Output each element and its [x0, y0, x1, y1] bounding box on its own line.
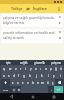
- button[interactable]: Shift: [1, 79, 10, 86]
- staticText: c: [22, 81, 24, 85]
- staticText: x: [17, 81, 19, 85]
- staticText: .: [51, 88, 52, 92]
- button[interactable]: v: [25, 79, 30, 86]
- button[interactable]: j: [33, 72, 39, 79]
- staticText: provide information on health and: [3, 31, 55, 35]
- staticText: ı: [40, 67, 41, 71]
- button[interactable]: l: [45, 72, 51, 79]
- staticText: d: [13, 74, 15, 78]
- button[interactable]: Clear: [58, 15, 62, 19]
- staticText: f: [18, 74, 20, 78]
- staticText: a: [3, 74, 5, 78]
- button[interactable]: k: [39, 72, 45, 79]
- staticText: w: [9, 67, 12, 71]
- button[interactable]: sağlık: [16, 60, 32, 65]
- button[interactable]: w: [7, 65, 13, 72]
- button[interactable]: x: [15, 79, 20, 86]
- button[interactable]: Home: [22, 93, 43, 100]
- button[interactable]: e: [13, 65, 18, 72]
- staticText: u: [35, 67, 37, 71]
- button[interactable]: h: [27, 72, 33, 79]
- button[interactable]: r: [18, 65, 23, 72]
- staticText: k: [41, 74, 43, 78]
- button[interactable]: n: [35, 79, 40, 86]
- staticText: j: [36, 74, 37, 78]
- button[interactable]: m: [40, 79, 45, 86]
- staticText: ö: [47, 81, 49, 85]
- button[interactable]: Emoji: [11, 86, 16, 93]
- staticText: i: [60, 74, 61, 78]
- staticText: h: [29, 74, 31, 78]
- staticText: g: [23, 74, 25, 78]
- staticText: y: [30, 67, 32, 71]
- staticText: t: [25, 67, 27, 71]
- button[interactable]: u: [33, 65, 38, 72]
- staticText: q: [3, 67, 5, 71]
- button[interactable]: p: [48, 65, 53, 72]
- staticText: sağlık: [20, 61, 28, 65]
- button[interactable]: q: [1, 65, 7, 72]
- button[interactable]: provide information on health and: [1, 29, 63, 43]
- button[interactable]: Recent apps: [43, 93, 64, 100]
- button[interactable]: ı: [38, 65, 43, 72]
- staticText: güvenlik: [34, 61, 46, 65]
- staticText: n: [37, 81, 39, 85]
- button[interactable]: .: [48, 86, 54, 93]
- button[interactable]: Back: [0, 93, 22, 100]
- staticText: ?123: [3, 88, 9, 91]
- button[interactable]: a: [1, 72, 6, 79]
- staticText: işte: [6, 61, 11, 65]
- button[interactable]: o: [43, 65, 48, 72]
- button[interactable]: More options: [56, 6, 62, 12]
- button[interactable]: i: [57, 72, 63, 79]
- staticText: s: [8, 74, 10, 78]
- staticText: p: [50, 67, 52, 71]
- staticText: çalışma ve sağlık güvenliği konularında: [3, 16, 57, 20]
- button[interactable]: b: [30, 79, 35, 86]
- staticText: Türkçe: [11, 6, 23, 11]
- staticText: l: [48, 74, 49, 78]
- button[interactable]: Language: [16, 86, 21, 93]
- staticText: ş: [53, 74, 55, 78]
- button[interactable]: Star: [58, 36, 62, 40]
- button[interactable]: işte: [0, 60, 16, 65]
- staticText: bilgiler veriniz: [3, 21, 24, 25]
- button[interactable]: çalışma: [48, 60, 64, 65]
- staticText: çalışma: [51, 61, 61, 65]
- button[interactable]: f: [16, 72, 21, 79]
- button[interactable]: z: [10, 79, 15, 86]
- button[interactable]: g: [21, 72, 27, 79]
- button[interactable]: Swap languages: [26, 7, 30, 11]
- button[interactable]: güvenlik: [32, 60, 48, 65]
- button[interactable]: Copy: [58, 30, 62, 34]
- button[interactable]: s: [6, 72, 11, 79]
- button[interactable]: c: [20, 79, 25, 86]
- button[interactable]: ?123: [1, 86, 11, 93]
- staticText: v: [27, 81, 29, 85]
- button[interactable]: ç: [50, 79, 55, 86]
- staticText: İngilizce: [33, 6, 47, 11]
- button[interactable]: d: [11, 72, 16, 79]
- button[interactable]: ğ: [53, 65, 58, 72]
- staticText: b: [32, 81, 34, 85]
- button[interactable]: İngilizce: [32, 5, 48, 12]
- button[interactable]: çalışma ve sağlık güvenliği konularında: [1, 14, 63, 27]
- staticText: ğ: [55, 67, 57, 71]
- button[interactable]: Türkçe: [10, 5, 24, 12]
- staticText: ü: [60, 67, 62, 71]
- staticText: o: [45, 67, 47, 71]
- staticText: ç: [52, 81, 54, 85]
- button[interactable]: t: [23, 65, 28, 72]
- button[interactable]: y: [28, 65, 33, 72]
- staticText: m: [41, 81, 44, 85]
- button[interactable]: ü: [58, 65, 63, 72]
- button[interactable]: ş: [51, 72, 57, 79]
- button[interactable]: Backspace: [55, 79, 63, 86]
- staticText: r: [20, 67, 22, 71]
- button[interactable]: Listen: [58, 21, 62, 25]
- button[interactable]: Enter: [54, 86, 63, 93]
- button[interactable]: ö: [45, 79, 50, 86]
- staticText: e: [15, 67, 17, 71]
- staticText: safety at work: [3, 36, 25, 40]
